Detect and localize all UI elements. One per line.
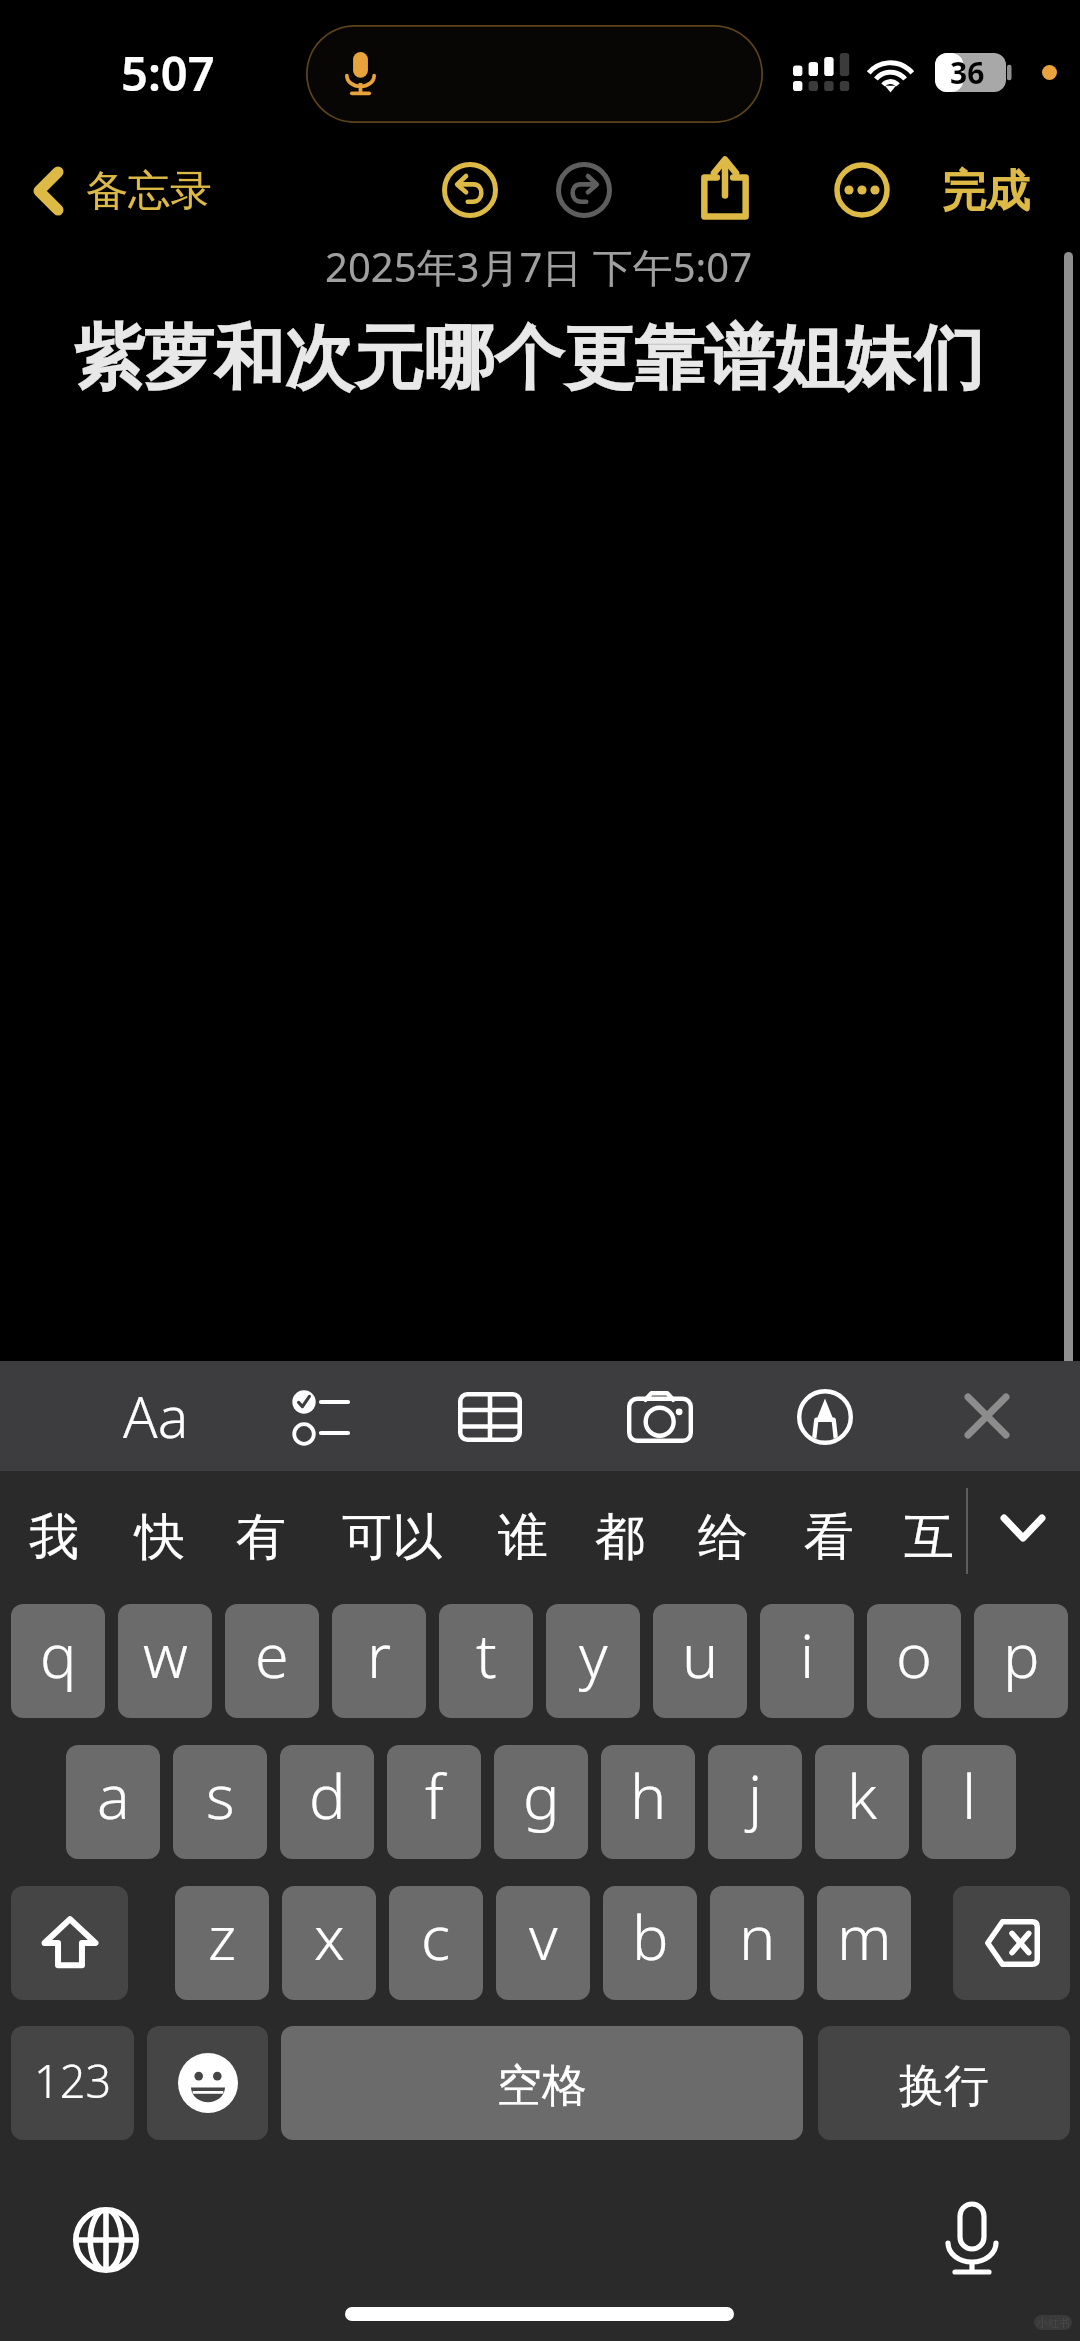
button[interactable]: Checklist	[265, 1368, 369, 1468]
button[interactable]: s	[173, 1745, 267, 1859]
staticText: a	[97, 1754, 130, 1837]
button[interactable]: 可以	[328, 1487, 456, 1587]
staticText: w	[143, 1613, 188, 1696]
button[interactable]: Shift	[11, 1886, 128, 2000]
button[interactable]: Camera	[608, 1367, 712, 1467]
staticText: o	[896, 1613, 932, 1696]
button[interactable]: Backspace	[953, 1886, 1070, 2000]
staticText: r	[367, 1613, 392, 1696]
button[interactable]: 我	[15, 1487, 93, 1587]
staticText: 快	[135, 1506, 185, 1569]
button[interactable]: More options	[810, 138, 914, 242]
staticText: t	[476, 1613, 497, 1696]
button[interactable]: 都	[581, 1487, 659, 1587]
staticText: c	[421, 1895, 451, 1978]
staticText: 36	[950, 52, 985, 91]
button[interactable]: Redo	[532, 138, 636, 242]
button[interactable]: 有	[222, 1487, 300, 1587]
staticText: z	[208, 1895, 237, 1978]
staticText: q	[40, 1613, 77, 1696]
button[interactable]: y	[546, 1604, 640, 1718]
button[interactable]: Close toolbar	[935, 1366, 1039, 1466]
button[interactable]: 123	[11, 2026, 134, 2140]
button[interactable]: 看	[790, 1487, 868, 1587]
staticText: m	[837, 1895, 892, 1978]
button[interactable]: Undo	[418, 138, 522, 242]
staticText: 有	[236, 1506, 286, 1569]
button[interactable]: Switch keyboard	[68, 2198, 144, 2282]
button[interactable]: 谁	[484, 1487, 562, 1587]
button[interactable]: r	[332, 1604, 426, 1718]
staticText: s	[206, 1754, 235, 1837]
button[interactable]: x	[282, 1886, 376, 2000]
staticText: h	[630, 1754, 667, 1837]
staticText: d	[309, 1754, 346, 1837]
button[interactable]: More candidates	[977, 1482, 1069, 1574]
button[interactable]: Markup	[773, 1367, 877, 1467]
button[interactable]: t	[439, 1604, 533, 1718]
button[interactable]: h	[601, 1745, 695, 1859]
button[interactable]: i	[760, 1604, 854, 1718]
staticText: f	[425, 1754, 444, 1837]
button[interactable]: Emoji	[147, 2026, 268, 2140]
staticText: 备忘录	[86, 165, 212, 218]
staticText: l	[962, 1754, 977, 1837]
button[interactable]: b	[603, 1886, 697, 2000]
staticText: 给	[698, 1506, 748, 1569]
button[interactable]: 空格	[281, 2026, 803, 2140]
staticText: e	[255, 1613, 289, 1696]
button[interactable]: k	[815, 1745, 909, 1859]
button[interactable]: v	[496, 1886, 590, 2000]
button[interactable]: Share	[673, 136, 777, 240]
staticText: 互	[904, 1506, 954, 1569]
staticText: x	[314, 1895, 345, 1978]
button[interactable]: m	[817, 1886, 911, 2000]
button[interactable]: Table	[438, 1367, 542, 1467]
button[interactable]: u	[653, 1604, 747, 1718]
staticText: u	[682, 1613, 719, 1696]
button[interactable]: 给	[684, 1487, 762, 1587]
button[interactable]: p	[974, 1604, 1068, 1718]
button[interactable]: 快	[121, 1487, 199, 1587]
button[interactable]: 备忘录	[20, 152, 212, 230]
staticText: 空格	[497, 2058, 587, 2115]
staticText: k	[847, 1754, 878, 1837]
button[interactable]: l	[922, 1745, 1016, 1859]
staticText: 我	[29, 1506, 79, 1569]
staticText: 谁	[498, 1506, 548, 1569]
button[interactable]: 完成	[928, 152, 1043, 230]
staticText: 都	[595, 1506, 645, 1569]
button[interactable]: 换行	[818, 2026, 1070, 2140]
staticText: Aa	[123, 1377, 189, 1455]
button[interactable]: d	[280, 1745, 374, 1859]
button[interactable]: a	[66, 1745, 160, 1859]
button[interactable]: z	[175, 1886, 269, 2000]
button[interactable]: e	[225, 1604, 319, 1718]
staticText: 可以	[342, 1506, 442, 1569]
button[interactable]: o	[867, 1604, 961, 1718]
staticText: 123	[34, 2050, 112, 2111]
button[interactable]: f	[387, 1745, 481, 1859]
staticText: 紫萝和次元哪个更靠谱姐妹们	[74, 315, 984, 403]
button[interactable]: n	[710, 1886, 804, 2000]
button[interactable]: j	[708, 1745, 802, 1859]
staticText: i	[800, 1613, 815, 1696]
staticText: 换行	[899, 2058, 989, 2115]
button[interactable]: Dictation	[937, 2194, 1007, 2282]
button[interactable]: q	[11, 1604, 105, 1718]
button[interactable]: w	[118, 1604, 212, 1718]
button[interactable]: 互	[890, 1487, 968, 1587]
staticText: 完成	[942, 164, 1030, 219]
staticText: y	[579, 1613, 608, 1696]
button[interactable]: c	[389, 1886, 483, 2000]
button[interactable]: Text format	[108, 1366, 204, 1466]
staticText: 小红书	[1037, 2316, 1070, 2330]
staticText: g	[523, 1754, 560, 1837]
button[interactable]: g	[494, 1745, 588, 1859]
staticText: p	[1003, 1613, 1040, 1696]
staticText: v	[529, 1895, 558, 1978]
staticText: n	[739, 1895, 776, 1978]
staticText: 看	[804, 1506, 854, 1569]
staticText: j	[748, 1754, 763, 1837]
staticText: 2025年3月7日 下午5:07	[325, 239, 753, 294]
